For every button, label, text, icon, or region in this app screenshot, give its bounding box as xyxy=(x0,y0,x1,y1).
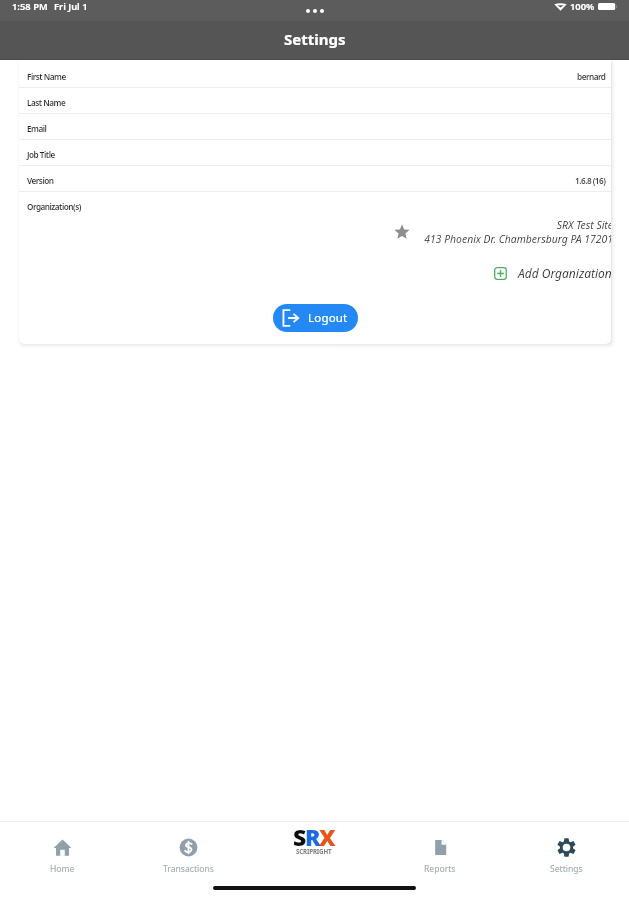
staticText: Transactions xyxy=(163,863,214,874)
button[interactable]: Add Organization xyxy=(494,265,611,281)
staticText: Last Name xyxy=(27,97,66,108)
staticText: X xyxy=(319,821,335,852)
button[interactable]: Home xyxy=(0,822,125,878)
button[interactable]: Reports xyxy=(377,822,503,878)
staticText: Add Organization xyxy=(518,265,611,281)
button[interactable]: Settings xyxy=(503,822,629,878)
button[interactable]: Logout xyxy=(273,304,358,332)
staticText: Version xyxy=(27,175,54,186)
staticText: Home xyxy=(50,863,75,874)
staticText: Reports xyxy=(424,863,456,874)
staticText: Organization(s) xyxy=(27,201,81,212)
button[interactable]: ScripRight home xyxy=(251,822,377,861)
staticText: Job Title xyxy=(27,149,55,160)
staticText: Settings xyxy=(550,863,583,874)
staticText: Settings xyxy=(284,29,346,49)
button[interactable]: First Name xyxy=(19,62,611,87)
button[interactable]: Job Title xyxy=(19,140,611,165)
staticText: bernard xyxy=(577,71,606,82)
button[interactable]: Transactions xyxy=(125,822,251,878)
staticText: 1.6.8 (16) xyxy=(575,175,606,186)
button[interactable]: SRX Test Site xyxy=(19,218,611,246)
staticText: Fri Jul 1 xyxy=(54,0,88,13)
staticText: SRX Test Site xyxy=(556,218,611,232)
button[interactable]: Last Name xyxy=(19,88,611,113)
button[interactable]: Version xyxy=(19,166,611,191)
button[interactable]: Organization(s) xyxy=(19,192,611,217)
button[interactable]: Email xyxy=(19,114,611,139)
staticText: Logout xyxy=(308,310,348,326)
staticText: 413 Phoenix Dr. Chambersburg PA 17201 xyxy=(424,232,611,246)
staticText: 1:58 PM xyxy=(12,0,48,13)
staticText: R xyxy=(305,821,319,852)
staticText: Email xyxy=(27,123,47,134)
staticText: First Name xyxy=(27,71,66,82)
staticText: S xyxy=(293,821,305,852)
staticText: 100% xyxy=(570,0,595,13)
staticText: SCRIPRIGHT xyxy=(296,847,332,855)
